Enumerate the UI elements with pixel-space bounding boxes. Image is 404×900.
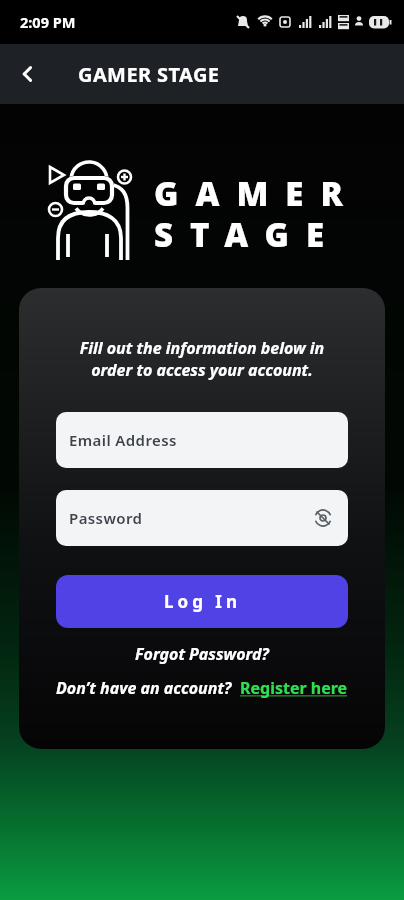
staticText: Email Address — [69, 430, 177, 450]
staticText: STAGE — [154, 212, 342, 257]
button[interactable]: Log In — [56, 575, 348, 628]
button[interactable]: Forgot Password? — [135, 643, 269, 665]
staticText: Register here — [240, 677, 348, 699]
staticText: 2:09 PM — [20, 12, 76, 32]
button[interactable]: Register here — [240, 677, 348, 699]
button[interactable]: Email Address — [56, 412, 348, 468]
staticText: Log In — [164, 590, 241, 613]
staticText: GAMER STAGE — [78, 61, 220, 88]
button[interactable]: Password — [56, 490, 348, 546]
staticText: GAMER — [154, 171, 360, 216]
button[interactable] — [311, 506, 335, 530]
staticText: Forgot Password? — [135, 643, 269, 665]
staticText: Don’t have an account? — [56, 677, 232, 699]
staticText: Password — [69, 508, 143, 528]
staticText: Fill out the information below in order … — [56, 337, 348, 381]
button[interactable] — [0, 44, 56, 104]
